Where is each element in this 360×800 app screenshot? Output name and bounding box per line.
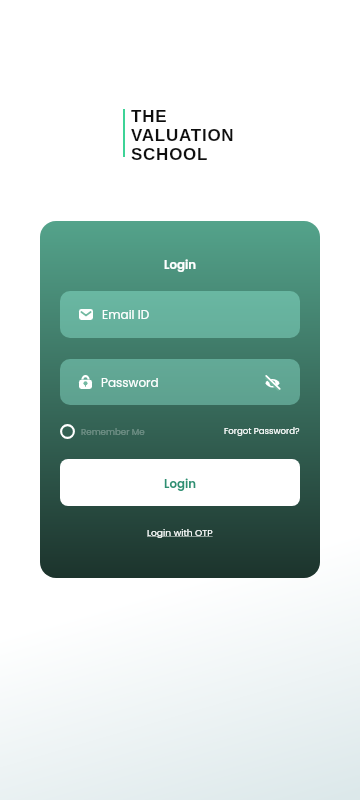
staticText: Login [60, 257, 300, 274]
button[interactable]: Forgot Password? [224, 425, 300, 437]
staticText: Login [164, 476, 197, 493]
button[interactable]: Password [60, 359, 300, 405]
button[interactable]: Login with OTP [147, 526, 213, 539]
staticText: Email ID [102, 306, 150, 323]
staticText: Password [101, 374, 159, 391]
staticText: VALUATION [131, 126, 235, 145]
button[interactable]: Email ID [60, 291, 300, 338]
staticText: SCHOOL [131, 145, 209, 164]
staticText: THE [131, 107, 168, 126]
button[interactable]: Login [60, 459, 300, 506]
button[interactable]: Remember Me [60, 424, 145, 439]
button[interactable]: Show password [261, 371, 283, 393]
staticText: Remember Me [81, 426, 145, 438]
